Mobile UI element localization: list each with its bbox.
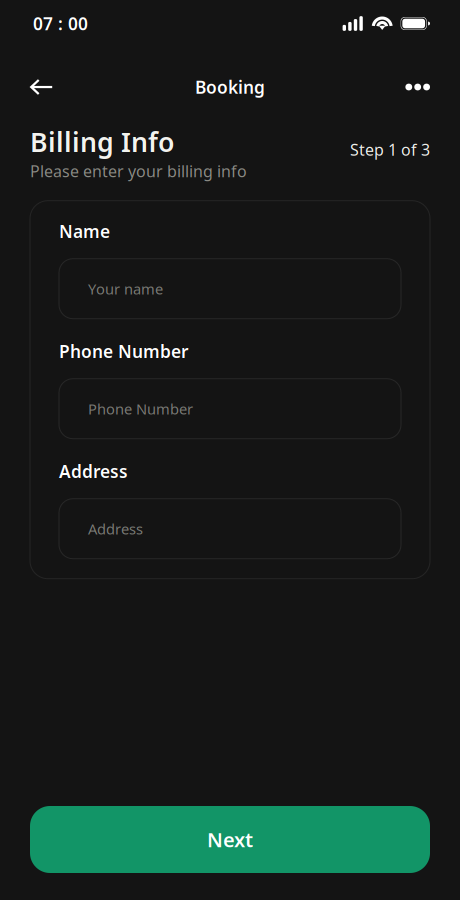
staticText: Next [207,826,253,853]
staticText: 07 : 00 [33,12,88,35]
button[interactable]: More options [386,67,430,107]
button[interactable]: Back [30,67,74,107]
staticText: Billing Info [30,124,174,159]
button[interactable]: Your name [59,259,401,319]
staticText: Your name [88,279,163,298]
button[interactable]: Next [30,806,430,873]
staticText: Booking [195,75,265,98]
button[interactable]: Phone Number [59,379,401,439]
staticText: Address [59,460,128,483]
staticText: Phone Number [88,399,193,418]
staticText: Address [88,519,143,538]
staticText: Step 1 of 3 [350,139,430,160]
button[interactable]: Address [59,499,401,559]
staticText: Phone Number [59,340,189,363]
staticText: Name [59,220,110,243]
staticText: Please enter your billing info [30,160,247,182]
